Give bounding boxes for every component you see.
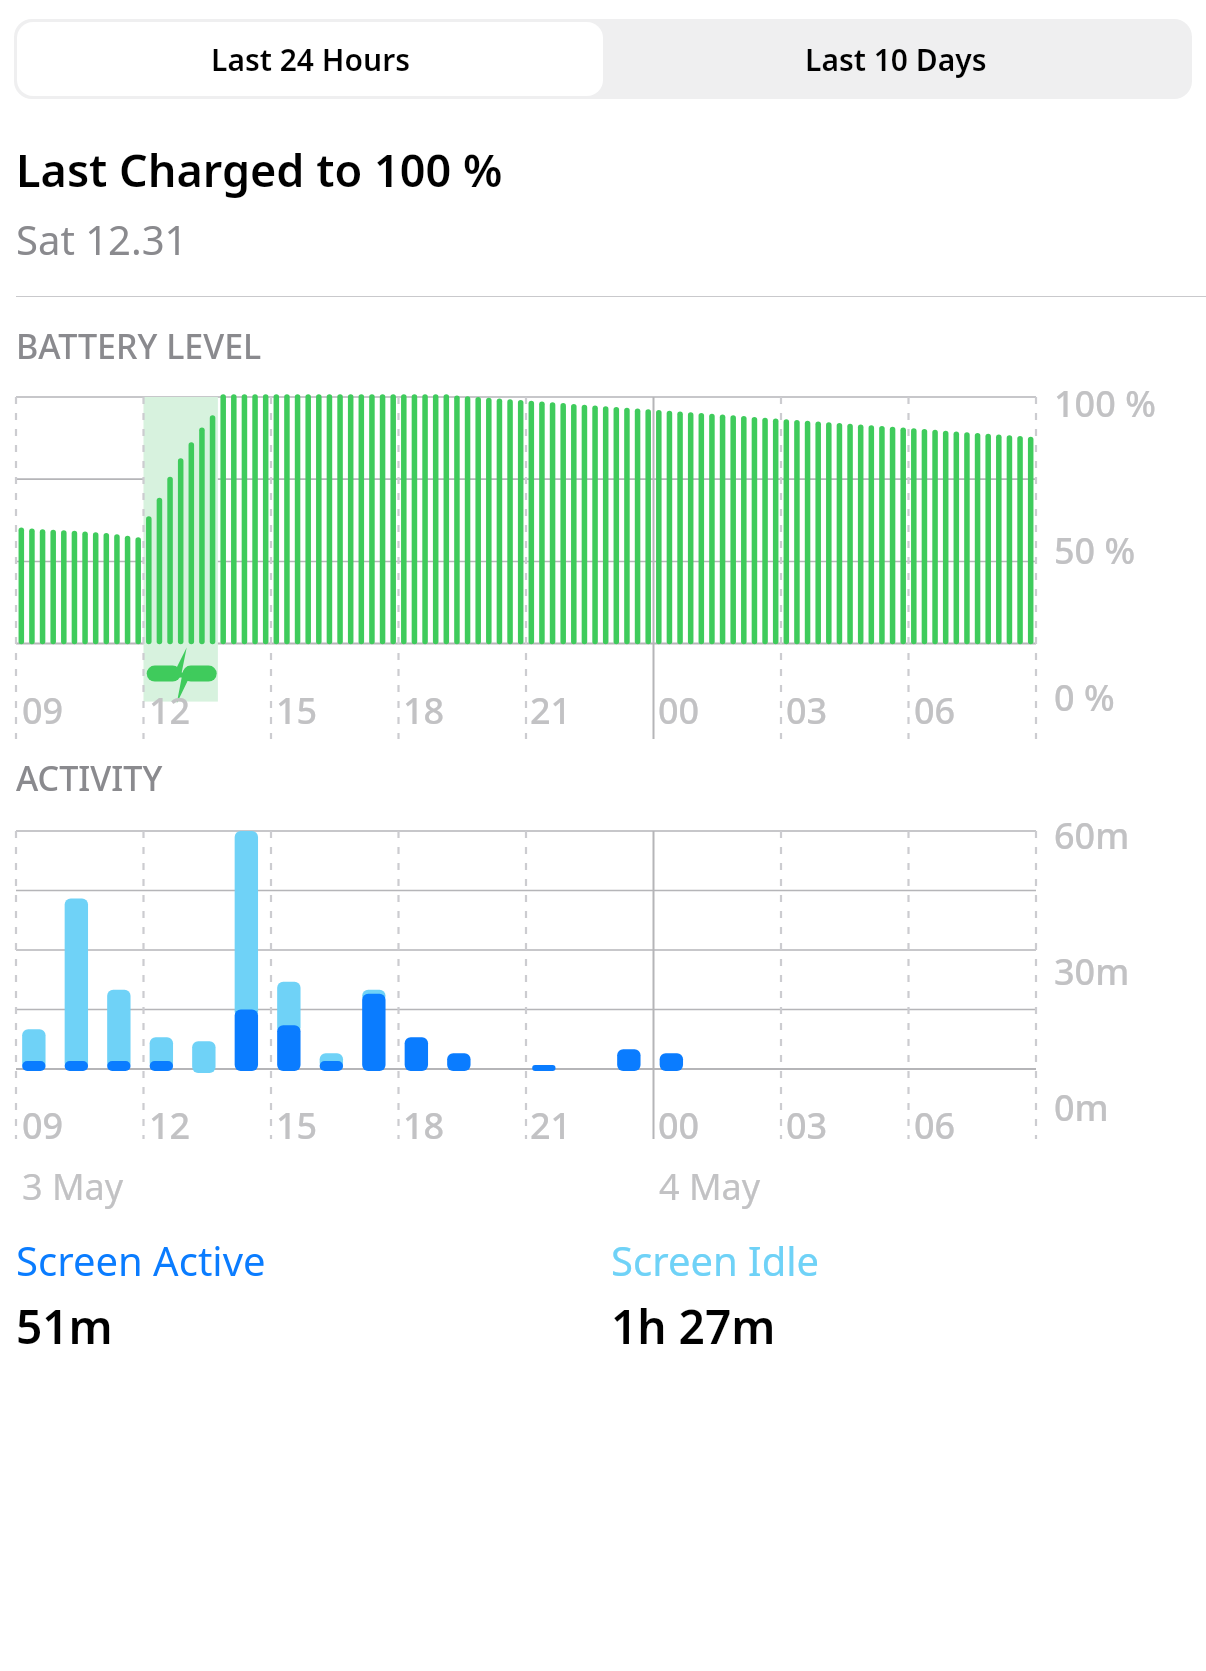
- staticText: 30m: [1054, 947, 1130, 996]
- staticText: ACTIVITY: [16, 755, 163, 801]
- staticText: 06: [914, 1101, 956, 1150]
- staticText: 100 %: [1054, 379, 1156, 428]
- staticText: 06: [914, 686, 956, 735]
- staticText: 3 May: [22, 1162, 124, 1211]
- staticText: Last 10 Days: [805, 39, 987, 80]
- staticText: 18: [403, 1101, 445, 1150]
- staticText: 15: [276, 1101, 318, 1150]
- staticText: 0m: [1054, 1083, 1109, 1132]
- staticText: 15: [276, 686, 318, 735]
- staticText: 03: [786, 686, 828, 735]
- staticText: 00: [658, 1101, 700, 1150]
- staticText: Sat 12.31: [16, 212, 188, 266]
- staticText: 00: [658, 686, 700, 735]
- staticText: Last 24 Hours: [211, 39, 410, 80]
- staticText: Last Charged to 100 %: [16, 139, 503, 200]
- staticText: Screen Active: [16, 1233, 266, 1287]
- staticText: 1h 27m: [611, 1295, 776, 1358]
- staticText: 60m: [1054, 811, 1130, 860]
- staticText: BATTERY LEVEL: [16, 323, 262, 369]
- staticText: 09: [22, 686, 64, 735]
- staticText: 12: [149, 686, 191, 735]
- staticText: 21: [530, 686, 572, 735]
- button[interactable]: Last 24 Hours: [17, 22, 603, 96]
- staticText: 03: [786, 1101, 828, 1150]
- staticText: 09: [22, 1101, 64, 1150]
- staticText: 12: [149, 1101, 191, 1150]
- staticText: 51m: [16, 1295, 113, 1358]
- staticText: 21: [530, 1101, 572, 1150]
- staticText: 18: [403, 686, 445, 735]
- staticText: 50 %: [1054, 526, 1136, 575]
- staticText: 4 May: [659, 1162, 761, 1211]
- staticText: 0 %: [1054, 673, 1115, 722]
- button[interactable]: Last 10 Days: [603, 22, 1189, 96]
- staticText: Screen Idle: [611, 1233, 820, 1287]
